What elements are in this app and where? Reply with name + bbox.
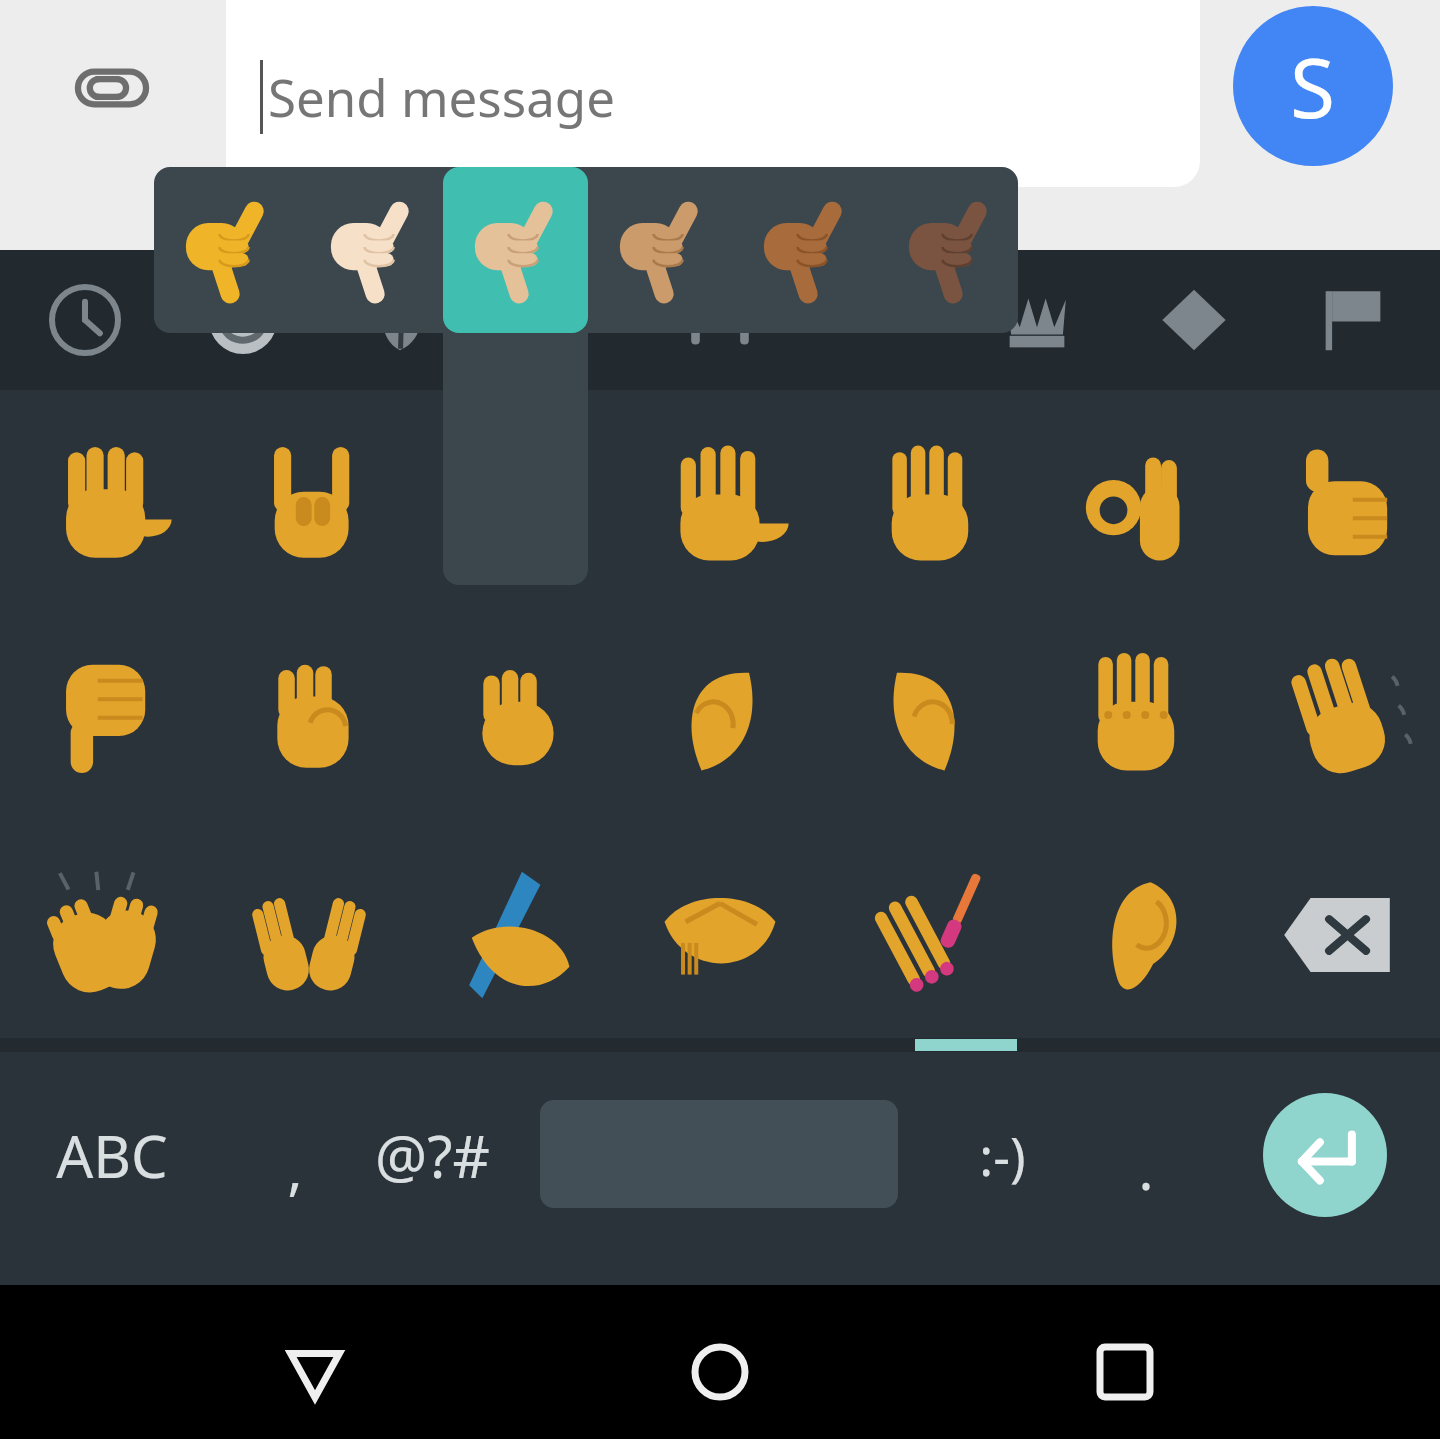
button[interactable]: thumbup bbox=[1234, 402, 1440, 608]
button[interactable]: nails bbox=[823, 832, 1029, 1038]
button[interactable]: Period bbox=[1091, 1113, 1201, 1223]
button[interactable]: shake bbox=[617, 832, 823, 1038]
button[interactable]: wave bbox=[1234, 612, 1440, 818]
button[interactable]: Flags bbox=[1274, 250, 1432, 390]
button[interactable]: ear bbox=[1029, 832, 1235, 1038]
button[interactable]: Skin tone 3 bbox=[441, 167, 585, 333]
button[interactable]: backhand bbox=[1029, 612, 1235, 818]
button[interactable]: thumbdown bbox=[0, 612, 206, 818]
staticText: Send message bbox=[268, 62, 615, 131]
button[interactable]: Symbols bbox=[337, 1100, 527, 1210]
button[interactable]: Skin tone 1 bbox=[152, 167, 296, 333]
button[interactable]: Activity bbox=[641, 250, 799, 390]
button[interactable]: Attach bbox=[60, 36, 164, 140]
button[interactable]: writing bbox=[411, 832, 617, 1038]
button[interactable]: Objects bbox=[799, 250, 957, 390]
staticText: . bbox=[1138, 1130, 1154, 1206]
button[interactable]: Recent apps bbox=[1055, 1302, 1195, 1439]
button[interactable]: Skin tone 5 bbox=[730, 167, 874, 333]
button[interactable]: Symbols2 bbox=[1115, 250, 1273, 390]
button[interactable]: Food bbox=[481, 250, 639, 390]
button[interactable]: vulcan bbox=[0, 402, 206, 608]
button[interactable]: Send message bbox=[226, 0, 1200, 187]
button[interactable]: Skin tone 2 bbox=[297, 167, 441, 333]
button[interactable]: Skin tone 4 bbox=[586, 167, 730, 333]
button[interactable]: fist bbox=[411, 612, 617, 818]
button[interactable]: Smileys bbox=[164, 250, 322, 390]
button[interactable]: call bbox=[411, 402, 617, 608]
button[interactable]: clap bbox=[0, 832, 206, 1038]
button[interactable]: Skin tone 6 bbox=[875, 167, 1019, 333]
staticText: ABC bbox=[56, 1116, 168, 1195]
staticText: , bbox=[287, 1130, 303, 1206]
button[interactable]: Emoticon bbox=[927, 1100, 1077, 1210]
button[interactable]: openhands bbox=[206, 832, 412, 1038]
staticText: @?# bbox=[375, 1116, 490, 1195]
button[interactable]: Recent bbox=[6, 250, 164, 390]
button[interactable]: open5 bbox=[617, 402, 823, 608]
button[interactable]: Nature bbox=[323, 250, 481, 390]
button[interactable]: ABC bbox=[12, 1100, 212, 1210]
button[interactable]: backspace bbox=[1234, 832, 1440, 1038]
button[interactable]: Back bbox=[245, 1302, 385, 1439]
button[interactable]: fistL bbox=[617, 612, 823, 818]
button[interactable]: Home bbox=[650, 1302, 790, 1439]
button[interactable]: ok bbox=[1029, 402, 1235, 608]
button[interactable]: Enter bbox=[1263, 1093, 1387, 1217]
button[interactable]: S bbox=[1233, 6, 1393, 166]
button[interactable]: Comma bbox=[235, 1113, 355, 1223]
button[interactable]: fistup bbox=[206, 612, 412, 818]
button[interactable]: Symbols bbox=[958, 250, 1116, 390]
button[interactable]: fistR bbox=[823, 612, 1029, 818]
button[interactable]: raised bbox=[823, 402, 1029, 608]
button[interactable]: horns bbox=[206, 402, 412, 608]
staticText: S bbox=[1290, 30, 1336, 142]
staticText: :-) bbox=[979, 1120, 1026, 1191]
